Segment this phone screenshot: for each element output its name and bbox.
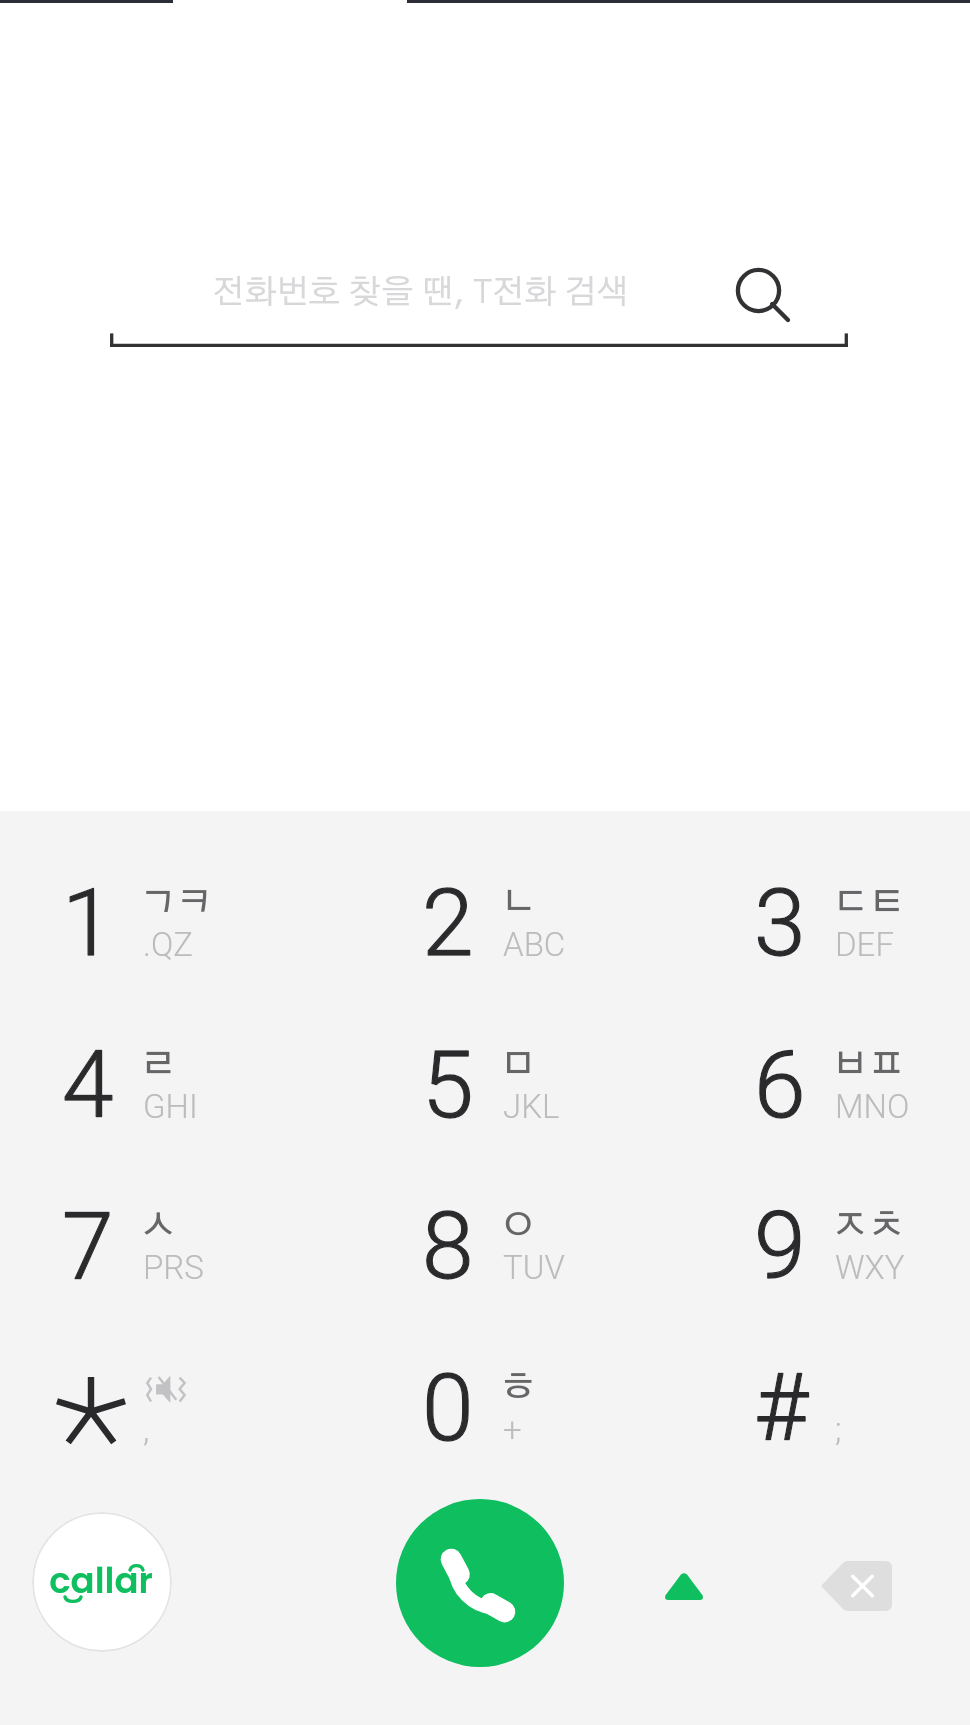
staticText: ㄱㅋ bbox=[140, 885, 213, 922]
button[interactable]: Key 9 bbox=[698, 1149, 970, 1311]
button[interactable]: Key 1 bbox=[6, 826, 306, 988]
button[interactable]: Backspace bbox=[796, 1526, 916, 1646]
staticText: DEF bbox=[835, 925, 894, 964]
staticText: 8 bbox=[422, 1192, 474, 1301]
staticText: ㅂㅍ bbox=[832, 1047, 905, 1084]
button[interactable]: Key 4 bbox=[6, 988, 306, 1150]
staticText: ; bbox=[835, 1410, 842, 1449]
staticText: 0 bbox=[422, 1354, 474, 1463]
button[interactable]: 전화번호 찾을 땐, T전화 검색 bbox=[110, 250, 848, 348]
staticText: ㅈㅊ bbox=[832, 1208, 905, 1245]
button[interactable]: callar bbox=[32, 1512, 172, 1652]
button[interactable]: Key # bbox=[698, 1311, 970, 1473]
staticText: ㄴ bbox=[500, 885, 537, 922]
staticText: 9 bbox=[754, 1192, 806, 1301]
staticText: # bbox=[754, 1354, 809, 1463]
staticText: ㄹ bbox=[140, 1047, 177, 1084]
staticText: WXY bbox=[835, 1248, 905, 1287]
staticText: 8 bbox=[422, 1192, 474, 1301]
staticText: 3 bbox=[754, 869, 806, 978]
staticText: 7 bbox=[62, 1192, 114, 1301]
staticText: 3 bbox=[754, 869, 806, 978]
staticText: 4 bbox=[62, 1031, 114, 1140]
staticText: JKL bbox=[503, 1087, 560, 1126]
staticText: ㄷㅌ bbox=[832, 885, 905, 922]
staticText: # bbox=[754, 1354, 809, 1463]
button[interactable]: Key 0 bbox=[366, 1311, 666, 1473]
staticText: + bbox=[503, 1410, 522, 1449]
staticText: 2 bbox=[422, 869, 474, 978]
button[interactable]: Key 3 bbox=[698, 826, 970, 988]
staticText: .QZ bbox=[143, 925, 193, 964]
staticText: MNO bbox=[835, 1087, 910, 1126]
staticText: ABC bbox=[503, 925, 566, 964]
staticText: 4 bbox=[62, 1031, 114, 1140]
button[interactable]: Key 7 bbox=[6, 1149, 306, 1311]
staticText: 0 bbox=[422, 1354, 474, 1463]
button[interactable]: Key 5 bbox=[366, 988, 666, 1150]
staticText: 5 bbox=[422, 1031, 474, 1140]
staticText: TUV bbox=[503, 1248, 565, 1287]
staticText: 5 bbox=[422, 1031, 474, 1140]
staticText: ㅎ bbox=[500, 1370, 537, 1407]
staticText: ㅅ bbox=[140, 1208, 177, 1245]
staticText: GHI bbox=[143, 1087, 198, 1126]
staticText: 7 bbox=[62, 1192, 114, 1301]
button[interactable]: Show more bbox=[624, 1526, 744, 1646]
button[interactable]: Key 6 bbox=[698, 988, 970, 1150]
staticText: ㅇ bbox=[500, 1208, 537, 1245]
staticText: 6 bbox=[754, 1031, 806, 1140]
staticText: 2 bbox=[422, 869, 474, 978]
staticText: 6 bbox=[754, 1031, 806, 1140]
staticText: 9 bbox=[754, 1192, 806, 1301]
button[interactable]: Key 8 bbox=[366, 1149, 666, 1311]
staticText: PRS bbox=[143, 1248, 204, 1287]
staticText: ㅁ bbox=[500, 1047, 537, 1084]
button[interactable]: Key * bbox=[6, 1311, 306, 1473]
button[interactable]: Key 2 bbox=[366, 826, 666, 988]
button[interactable]: Call bbox=[396, 1499, 564, 1667]
staticText: , bbox=[143, 1410, 150, 1449]
staticText: callar bbox=[49, 1556, 153, 1606]
staticText: 1 bbox=[62, 869, 114, 978]
staticText: 전화번호 찾을 땐, T전화 검색 bbox=[212, 276, 629, 310]
staticText: 1 bbox=[62, 869, 114, 978]
